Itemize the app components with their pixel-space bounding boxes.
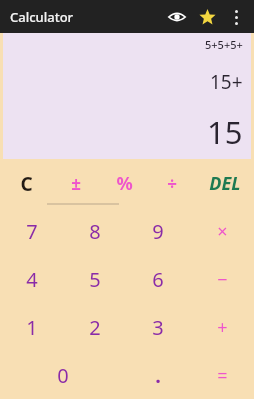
button[interactable]: 0 xyxy=(0,351,126,399)
staticText: 1 xyxy=(26,314,38,341)
button[interactable]: 7 xyxy=(0,208,63,255)
button[interactable]: Favorite xyxy=(192,2,222,32)
button[interactable]: DEL xyxy=(196,159,254,208)
staticText: 15 xyxy=(207,111,243,153)
button[interactable]: ± xyxy=(52,159,100,208)
button[interactable]: % xyxy=(100,159,148,208)
staticText: 2 xyxy=(89,314,101,341)
button[interactable]: More options xyxy=(222,3,250,31)
staticText: 5 xyxy=(89,266,101,293)
staticText: 3 xyxy=(152,314,164,341)
button[interactable]: 3 xyxy=(126,303,190,351)
staticText: 0 xyxy=(57,362,69,389)
staticText: Calculator xyxy=(10,8,74,26)
staticText: + xyxy=(217,315,228,340)
staticText: × xyxy=(217,219,228,244)
button[interactable]: . xyxy=(126,351,190,399)
button[interactable]: 2 xyxy=(63,303,126,351)
staticText: . xyxy=(155,362,161,389)
staticText: = xyxy=(217,363,228,388)
button[interactable]: × xyxy=(190,208,254,255)
button[interactable]: 9 xyxy=(126,208,190,255)
staticText: % xyxy=(116,171,133,196)
staticText: C xyxy=(20,171,33,197)
button[interactable]: 5 xyxy=(63,255,126,303)
staticText: ÷ xyxy=(167,172,177,195)
button[interactable]: 4 xyxy=(0,255,63,303)
staticText: 5+5+5+ xyxy=(205,37,243,52)
button[interactable]: = xyxy=(190,351,254,399)
staticText: − xyxy=(217,267,228,292)
staticText: 9 xyxy=(152,218,164,245)
staticText: ± xyxy=(71,172,81,195)
staticText: 6 xyxy=(152,266,164,293)
button[interactable]: 6 xyxy=(126,255,190,303)
button[interactable]: 1 xyxy=(0,303,63,351)
button[interactable]: − xyxy=(190,255,254,303)
staticText: DEL xyxy=(209,171,241,196)
button[interactable]: Show history xyxy=(162,2,192,32)
button[interactable]: 8 xyxy=(63,208,126,255)
staticText: 15+ xyxy=(210,69,243,95)
button[interactable]: + xyxy=(190,303,254,351)
button[interactable]: C xyxy=(0,159,52,208)
staticText: 8 xyxy=(89,218,101,245)
staticText: 7 xyxy=(26,218,38,245)
button[interactable]: ÷ xyxy=(148,159,196,208)
staticText: 4 xyxy=(26,266,38,293)
